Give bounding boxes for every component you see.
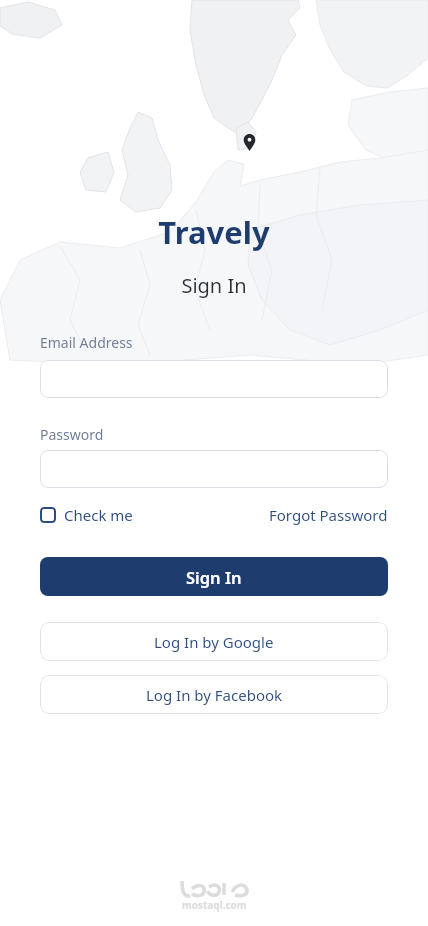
staticText: Password	[40, 425, 104, 444]
staticText: mostaql.com	[182, 898, 247, 912]
staticText: Check me	[64, 505, 133, 525]
staticText: Email Address	[40, 333, 133, 352]
button[interactable]: Log In by Facebook	[40, 675, 388, 714]
button[interactable]: Forgot Password	[269, 505, 388, 525]
button[interactable]	[40, 360, 388, 398]
staticText: Travely	[158, 211, 270, 253]
staticText: Sign In	[186, 566, 242, 588]
button[interactable]	[40, 450, 388, 488]
button[interactable]: Log In by Google	[40, 622, 388, 661]
staticText: Log In by Google	[154, 632, 274, 652]
button[interactable]: Sign In	[40, 557, 388, 596]
button[interactable]: Check me	[40, 505, 133, 525]
staticText: Log In by Facebook	[146, 685, 283, 705]
staticText: Sign In	[181, 272, 247, 299]
